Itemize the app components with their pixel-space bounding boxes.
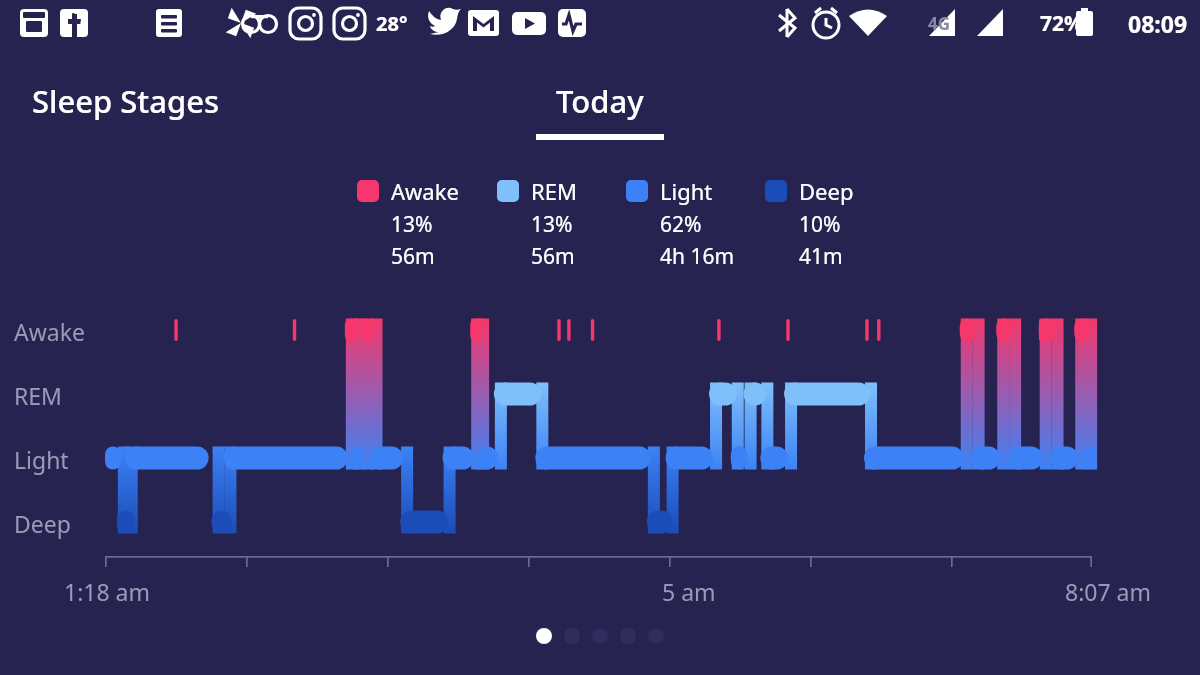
button[interactable]: Light: [626, 176, 765, 271]
staticText: Light: [14, 444, 69, 475]
staticText: Deep: [799, 176, 854, 206]
staticText: 13%: [531, 210, 573, 239]
button[interactable]: Today: [536, 80, 664, 140]
button[interactable]: Awake: [357, 176, 497, 271]
button[interactable]: Deep: [765, 176, 895, 271]
staticText: 72%: [1040, 9, 1083, 38]
staticText: 28°: [376, 10, 408, 37]
staticText: REM: [14, 380, 62, 411]
staticText: 56m: [391, 242, 435, 271]
staticText: 08:09: [1128, 8, 1188, 39]
button[interactable]: Page 5: [648, 628, 664, 644]
staticText: Today: [556, 80, 644, 122]
staticText: 4G: [928, 12, 951, 35]
staticText: Awake: [14, 316, 85, 347]
staticText: 41m: [799, 242, 843, 271]
staticText: 10%: [799, 210, 841, 239]
staticText: 62%: [660, 210, 702, 239]
staticText: 4h 16m: [660, 242, 735, 271]
button[interactable]: Page 1: [536, 628, 552, 644]
staticText: Awake: [391, 176, 459, 206]
button[interactable]: Sleep Stages: [32, 80, 220, 122]
button[interactable]: REM: [497, 176, 626, 271]
staticText: REM: [531, 176, 577, 206]
button[interactable]: Page 3: [592, 628, 608, 644]
button[interactable]: Page 4: [620, 628, 636, 644]
staticText: 5 am: [662, 576, 716, 607]
staticText: Light: [660, 176, 713, 206]
staticText: 8:07 am: [1065, 576, 1152, 607]
staticText: 56m: [531, 242, 575, 271]
staticText: Deep: [14, 508, 71, 539]
staticText: 13%: [391, 210, 433, 239]
button[interactable]: Page 2: [564, 628, 580, 644]
staticText: 1:18 am: [64, 576, 151, 607]
